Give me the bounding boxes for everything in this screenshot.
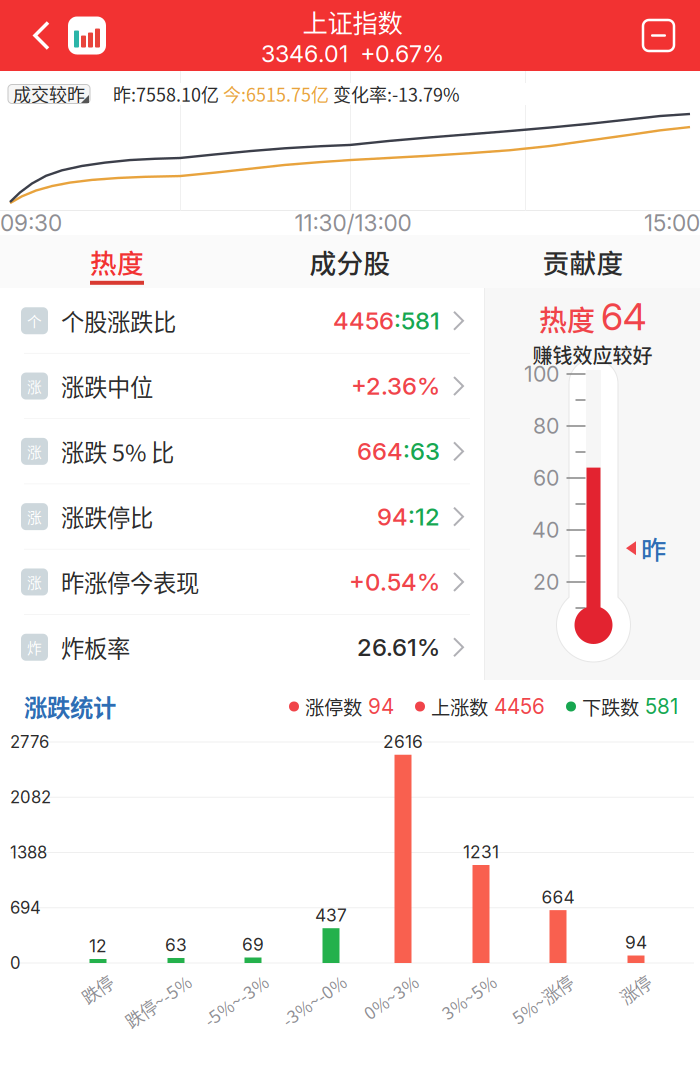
staticText: 12 (89, 935, 107, 956)
staticText: 昨:7558.10亿 (113, 81, 223, 107)
staticText: 664 (541, 887, 574, 908)
staticText: 0 (10, 953, 21, 973)
staticText: +0.54% (349, 567, 440, 596)
staticText: 100 (524, 361, 559, 387)
staticText: 64 (601, 294, 646, 339)
staticText: 69 (242, 934, 264, 955)
staticText: :12 (408, 502, 440, 531)
staticText: 下跌数 (582, 692, 639, 720)
staticText: -5%~-3% (185, 969, 259, 994)
staticText: 涨停 (608, 969, 642, 994)
staticText: 1231 (463, 841, 499, 862)
staticText: 上证指数 (302, 3, 402, 40)
staticText: 664 (357, 437, 403, 466)
staticText: 437 (315, 905, 347, 926)
staticText: 跌停~-5% (106, 969, 182, 994)
button[interactable]: 成分股 (233, 235, 466, 288)
staticText: 4456 (333, 306, 394, 335)
staticText: 63 (165, 934, 187, 955)
staticText: 涨跌统计 (24, 690, 116, 723)
staticText: 涨停数 (305, 692, 362, 720)
staticText: 94 (377, 502, 408, 531)
button[interactable]: 热度 (0, 235, 233, 288)
staticText: 涨 (27, 571, 42, 592)
button[interactable]: 个 (0, 289, 484, 353)
staticText: :581 (394, 306, 440, 335)
staticText: 个 (27, 310, 42, 331)
staticText: 涨 (27, 441, 42, 462)
staticText: 昨涨停今表现 (61, 565, 199, 599)
staticText: 3%~5% (425, 969, 487, 994)
button[interactable]: 成交较昨 (0, 84, 105, 103)
staticText: 3346.01 +0.67% (261, 40, 444, 68)
staticText: 60 (533, 465, 559, 491)
button[interactable]: Back (0, 0, 68, 71)
button[interactable]: 涨 (0, 419, 484, 483)
staticText: 热度 (90, 242, 144, 281)
button[interactable]: 炸 (0, 615, 484, 679)
staticText: 1388 (10, 842, 47, 863)
staticText: 赚钱效应较好 (532, 340, 652, 369)
staticText: 0%~3% (347, 969, 409, 994)
button[interactable]: Minimize (629, 0, 700, 71)
staticText: 2616 (383, 731, 423, 752)
staticText: 个股涨跌比 (61, 304, 176, 338)
button[interactable]: 涨 (0, 550, 484, 614)
staticText: :63 (403, 437, 440, 466)
staticText: 694 (10, 898, 41, 918)
staticText: 80 (533, 413, 559, 439)
staticText: 成交较昨 (13, 81, 85, 107)
staticText: 94 (368, 694, 394, 719)
staticText: 15:00 (644, 209, 700, 237)
staticText: 上涨数 (431, 692, 488, 720)
staticText: 跌停 (70, 969, 104, 994)
staticText: 今:6515.75亿 (223, 81, 333, 107)
button[interactable]: 涨 (0, 354, 484, 418)
staticText: -3%~-0% (263, 969, 337, 994)
staticText: 09:30 (0, 209, 62, 237)
staticText: 成分股 (309, 242, 390, 281)
staticText: 26.61% (357, 633, 440, 662)
button[interactable]: 贡献度 (466, 235, 699, 288)
staticText: +2.36% (351, 371, 440, 400)
staticText: 2082 (10, 787, 51, 807)
staticText: 涨跌 5% 比 (61, 434, 174, 468)
staticText: 涨 (27, 375, 42, 397)
staticText: 热度 (539, 299, 595, 339)
staticText: 11:30/13:00 (294, 209, 411, 237)
staticText: 4456 (494, 694, 545, 719)
staticText: 涨 (27, 506, 42, 527)
staticText: 变化率:-13.79% (333, 81, 460, 107)
staticText: 40 (532, 517, 559, 543)
staticText: 94 (625, 932, 647, 953)
staticText: 2776 (10, 732, 49, 752)
staticText: 贡献度 (542, 242, 623, 281)
staticText: 581 (645, 694, 678, 719)
staticText: 炸板率 (61, 630, 130, 664)
staticText: 涨跌停比 (61, 500, 153, 534)
staticText: 昨 (641, 530, 666, 567)
staticText: 20 (533, 569, 559, 595)
staticText: 涨跌中位 (61, 369, 153, 403)
button[interactable]: 涨 (0, 484, 484, 549)
staticText: 炸 (27, 637, 42, 658)
staticText: 5%~涨停 (494, 969, 564, 994)
